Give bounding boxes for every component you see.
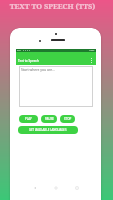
- button[interactable]: More options: [89, 58, 94, 63]
- button[interactable]: STOP: [60, 115, 75, 123]
- staticText: 100%: [89, 49, 95, 52]
- button[interactable]: GET AVAILABLE LANGUAGES: [18, 126, 78, 134]
- staticText: 9:41: [17, 49, 22, 52]
- staticText: GET AVAILABLE LANGUAGES: [29, 128, 67, 132]
- button[interactable]: Home: [54, 186, 58, 190]
- staticText: TEXT TO SPEECH (TTS): [0, 1, 109, 11]
- staticText: TEXT TO SPEECH (TTS): [0, 1, 109, 11]
- staticText: Text to Speech: [18, 59, 39, 63]
- button[interactable]: PAUSE: [41, 115, 57, 123]
- staticText: PAUSE: [45, 117, 54, 121]
- button[interactable]: Recents: [75, 186, 79, 190]
- staticText: STOP: [64, 117, 72, 121]
- button[interactable]: Back: [33, 186, 37, 190]
- staticText: PLAY: [25, 117, 32, 121]
- button[interactable]: PLAY: [19, 115, 38, 123]
- staticText: Start where you are...: [21, 67, 55, 72]
